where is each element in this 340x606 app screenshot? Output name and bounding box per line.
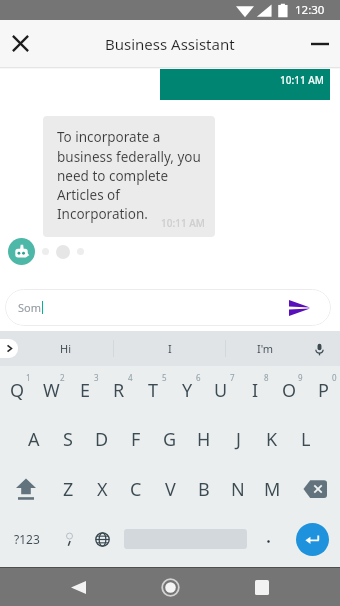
staticText: M xyxy=(264,477,281,502)
button[interactable]: 10:11 AM xyxy=(160,69,330,100)
button[interactable]: J xyxy=(221,415,255,464)
button[interactable]: I xyxy=(114,331,225,366)
button[interactable]: S xyxy=(51,415,85,464)
button[interactable]: Back xyxy=(32,568,124,606)
staticText: Som xyxy=(18,300,41,315)
staticText: 7 xyxy=(230,372,235,383)
button[interactable]: Backspace xyxy=(289,464,340,514)
button[interactable]: I xyxy=(238,366,272,415)
staticText: ?123 xyxy=(14,531,40,547)
button[interactable]: G xyxy=(153,415,187,464)
staticText: X xyxy=(97,477,108,502)
button[interactable]: C xyxy=(119,464,153,514)
staticText: A xyxy=(28,427,40,452)
staticText: 4 xyxy=(128,372,133,383)
staticText: L xyxy=(301,427,311,452)
button[interactable]: Home xyxy=(124,568,216,606)
button[interactable]: Space xyxy=(119,514,252,564)
staticText: O xyxy=(282,378,297,403)
button[interactable]: Q xyxy=(0,366,34,415)
button[interactable]: I'm xyxy=(226,331,340,366)
button[interactable]: To incorporate a business federally, you… xyxy=(43,116,215,237)
staticText: B xyxy=(198,477,210,502)
button[interactable]: Change language xyxy=(86,514,119,564)
button[interactable]: Period xyxy=(252,514,284,564)
button[interactable]: X xyxy=(85,464,119,514)
staticText: I xyxy=(252,378,259,403)
button[interactable]: M xyxy=(255,464,289,514)
staticText: Q xyxy=(10,378,25,403)
staticText: 10:11 AM xyxy=(280,73,324,87)
staticText: I'm xyxy=(257,341,274,356)
button[interactable]: P xyxy=(306,366,340,415)
staticText: 5 xyxy=(162,372,167,383)
button[interactable]: F xyxy=(119,415,153,464)
staticText: 6 xyxy=(196,372,201,383)
staticText: 0 xyxy=(332,372,337,383)
staticText: E xyxy=(80,378,91,403)
button[interactable]: U xyxy=(204,366,238,415)
button[interactable]: R xyxy=(102,366,136,415)
staticText: I xyxy=(168,341,172,356)
button[interactable]: O xyxy=(272,366,306,415)
button[interactable]: Close xyxy=(0,20,40,67)
staticText: To incorporate a business federally, you… xyxy=(57,128,201,223)
button[interactable]: Emoji and comma xyxy=(53,514,86,564)
staticText: H xyxy=(197,427,211,452)
staticText: W xyxy=(43,378,60,403)
staticText: Z xyxy=(63,477,74,502)
button[interactable]: Voice input xyxy=(305,335,333,363)
staticText: F xyxy=(131,427,141,452)
staticText: Business Assistant xyxy=(105,34,235,54)
staticText: R xyxy=(113,378,125,403)
button[interactable]: W xyxy=(34,366,68,415)
button[interactable]: Y xyxy=(170,366,204,415)
button[interactable]: B xyxy=(187,464,221,514)
button[interactable]: D xyxy=(85,415,119,464)
staticText: P xyxy=(318,378,329,403)
staticText: 2 xyxy=(60,372,65,383)
button[interactable]: A xyxy=(17,415,51,464)
staticText: G xyxy=(163,427,177,452)
staticText: T xyxy=(148,378,159,403)
button[interactable]: Hi xyxy=(18,331,113,366)
staticText: Hi xyxy=(60,341,71,356)
button[interactable]: T xyxy=(136,366,170,415)
button[interactable]: Send xyxy=(280,289,318,326)
button[interactable]: Shift xyxy=(0,464,51,514)
staticText: 9 xyxy=(298,372,303,383)
staticText: U xyxy=(214,378,228,403)
button[interactable]: L xyxy=(289,415,323,464)
button[interactable]: V xyxy=(153,464,187,514)
staticText: C xyxy=(130,477,142,502)
staticText: V xyxy=(165,477,176,502)
staticText: 3 xyxy=(94,372,99,383)
staticText: K xyxy=(266,427,278,452)
button[interactable]: H xyxy=(187,415,221,464)
button[interactable]: Expand toolbar xyxy=(0,339,18,358)
staticText: 8 xyxy=(264,372,269,383)
button[interactable]: Enter xyxy=(284,514,340,564)
staticText: Y xyxy=(182,378,193,403)
button[interactable]: Recent apps xyxy=(216,568,308,606)
staticText: J xyxy=(236,427,241,452)
button[interactable]: E xyxy=(68,366,102,415)
staticText: S xyxy=(63,427,73,452)
staticText: 10:11 AM xyxy=(161,216,205,230)
button[interactable]: N xyxy=(221,464,255,514)
button[interactable]: Z xyxy=(51,464,85,514)
staticText: 1 xyxy=(26,372,31,383)
button[interactable]: ?123 xyxy=(0,514,53,564)
staticText: D xyxy=(95,427,109,452)
button[interactable]: K xyxy=(255,415,289,464)
staticText: 12:30 xyxy=(295,2,325,18)
staticText: N xyxy=(231,477,245,502)
button[interactable]: Minimize xyxy=(300,20,340,67)
